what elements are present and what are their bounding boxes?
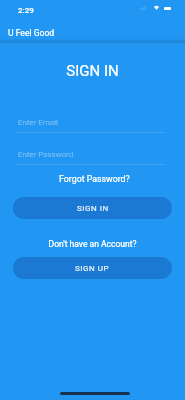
staticText: Forgot Password?: [59, 174, 130, 184]
button[interactable]: SIGN IN: [13, 197, 172, 219]
button[interactable]: Enter Email: [16, 113, 166, 135]
staticText: SIGN IN: [77, 204, 109, 213]
staticText: U Feel Good: [8, 28, 55, 38]
other: Cellular signal: [140, 6, 146, 10]
staticText: Don't have an Account?: [0, 239, 185, 249]
button[interactable]: Forgot Password?: [57, 172, 132, 186]
staticText: 2:29: [18, 6, 34, 15]
button[interactable]: Enter Password: [16, 145, 166, 167]
staticText: Enter Email: [18, 118, 58, 127]
other: Wi-Fi: [154, 6, 159, 10]
button[interactable]: SIGN UP: [13, 257, 172, 279]
staticText: SIGN UP: [75, 264, 110, 273]
other: Battery: [164, 7, 171, 10]
staticText: SIGN IN: [0, 62, 185, 80]
staticText: Enter Password: [18, 150, 74, 159]
